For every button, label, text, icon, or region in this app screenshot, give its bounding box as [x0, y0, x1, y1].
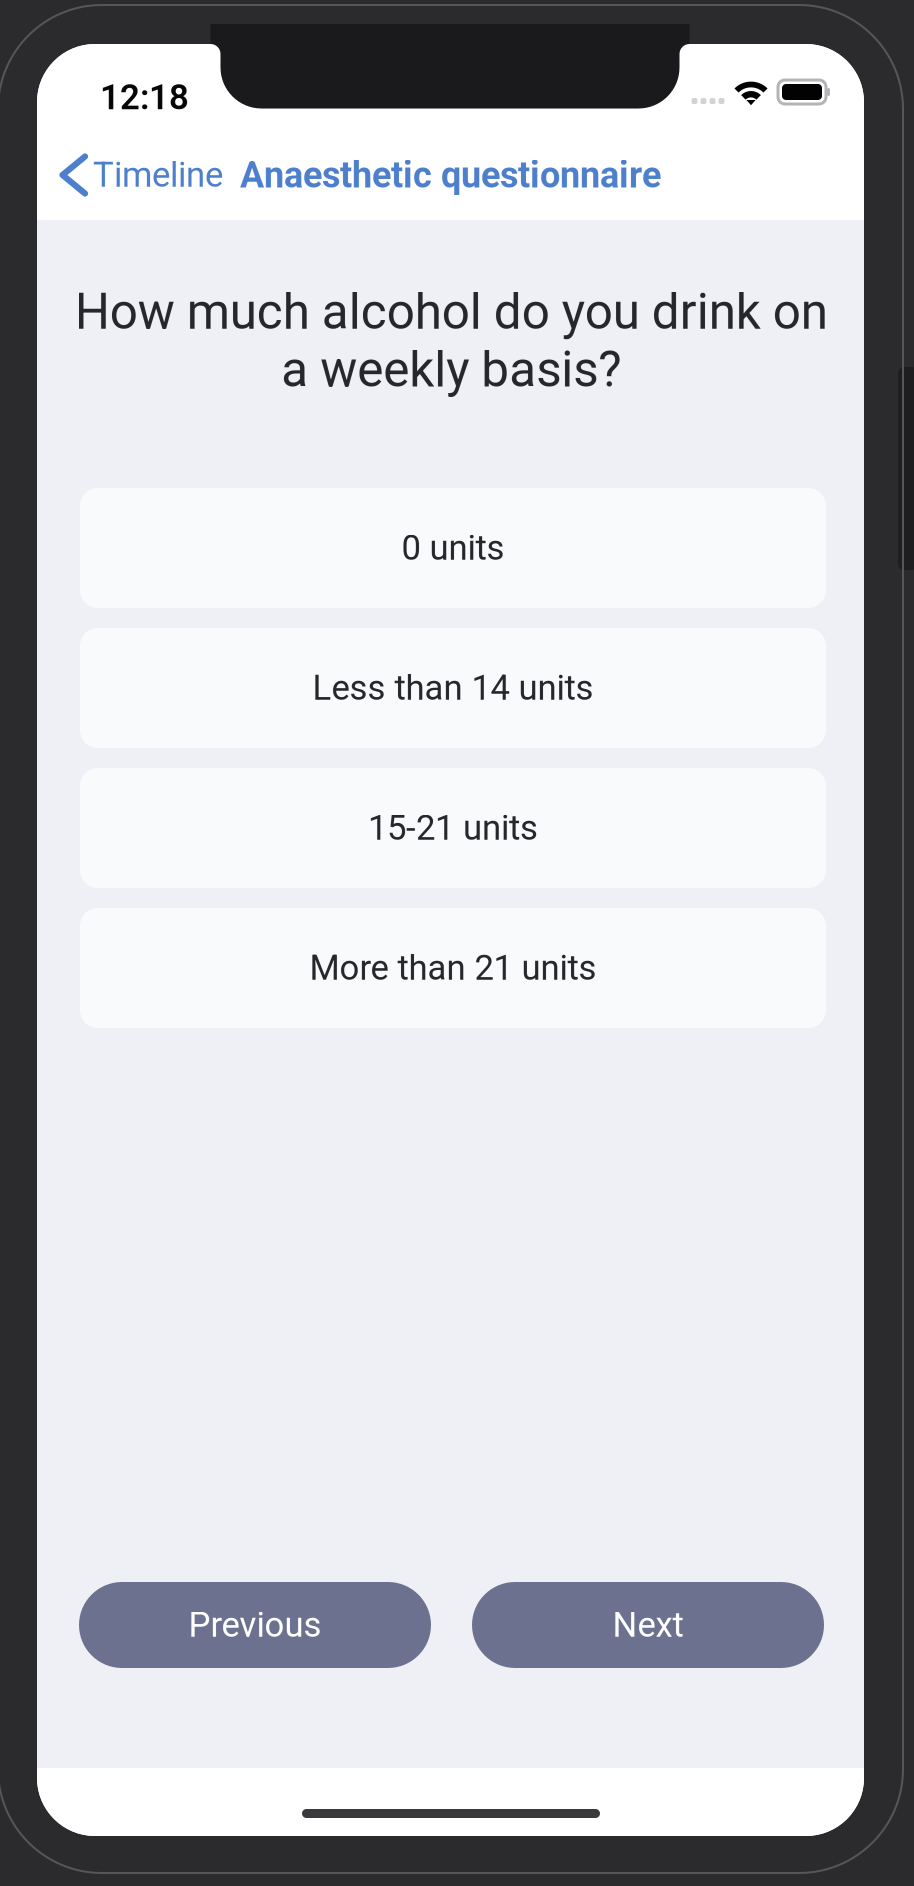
- button[interactable]: Timeline: [59, 147, 223, 203]
- staticText: 0 units: [401, 528, 504, 568]
- staticText: More than 21 units: [309, 948, 596, 988]
- staticText: Previous: [188, 1605, 321, 1645]
- button[interactable]: More than 21 units: [80, 908, 826, 1028]
- button[interactable]: 15-21 units: [80, 768, 826, 888]
- staticText: 12:18: [100, 77, 189, 118]
- staticText: Next: [612, 1605, 683, 1645]
- staticText: 15-21 units: [368, 808, 538, 848]
- button[interactable]: Less than 14 units: [80, 628, 826, 748]
- button[interactable]: Next: [472, 1582, 824, 1668]
- staticText: Anaesthetic questionnaire: [240, 154, 661, 196]
- staticText: How much alcohol do you drink on a weekl…: [74, 283, 827, 399]
- button[interactable]: Previous: [79, 1582, 431, 1668]
- staticText: Timeline: [93, 155, 223, 195]
- button[interactable]: 0 units: [80, 488, 826, 608]
- staticText: Less than 14 units: [312, 668, 593, 708]
